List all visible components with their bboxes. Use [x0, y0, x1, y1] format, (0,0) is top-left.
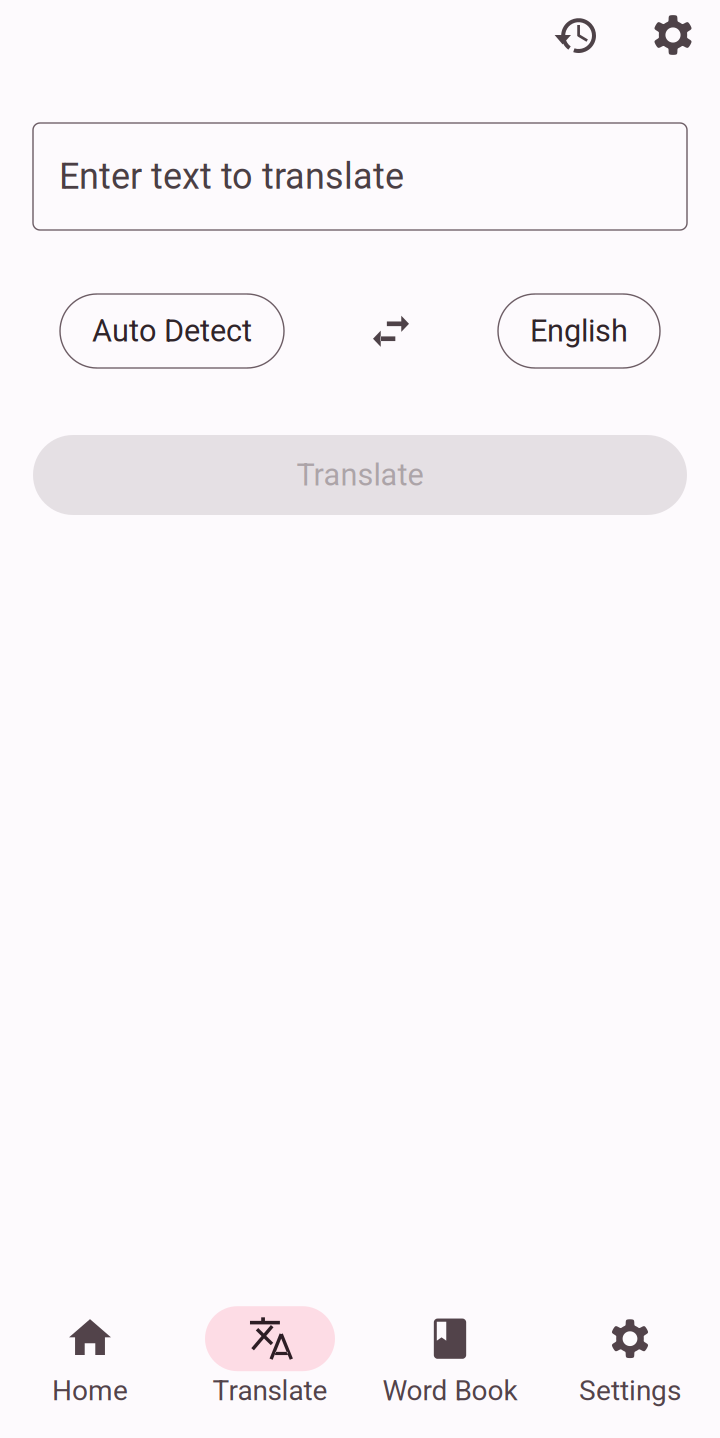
button[interactable]: Word Book	[360, 1306, 540, 1407]
staticText: Settings	[579, 1374, 681, 1407]
button[interactable]: English	[498, 294, 660, 368]
button[interactable]: History	[536, 1, 612, 69]
button[interactable]: Settings	[540, 1306, 720, 1407]
button[interactable]: Settings	[635, 1, 711, 69]
staticText: Enter text to translate	[59, 155, 404, 198]
button[interactable]: Enter text to translate	[33, 123, 687, 230]
button[interactable]: Swap languages	[358, 298, 424, 364]
button[interactable]: Translate	[180, 1306, 360, 1407]
staticText: Translate	[212, 1374, 327, 1407]
staticText: English	[530, 313, 628, 349]
button[interactable]: Translate	[33, 435, 687, 515]
staticText: Auto Detect	[92, 313, 252, 349]
button[interactable]: Auto Detect	[60, 294, 284, 368]
button[interactable]: Home	[0, 1306, 180, 1407]
staticText: Home	[52, 1374, 128, 1407]
staticText: Translate	[296, 457, 423, 493]
staticText: Word Book	[382, 1374, 517, 1407]
